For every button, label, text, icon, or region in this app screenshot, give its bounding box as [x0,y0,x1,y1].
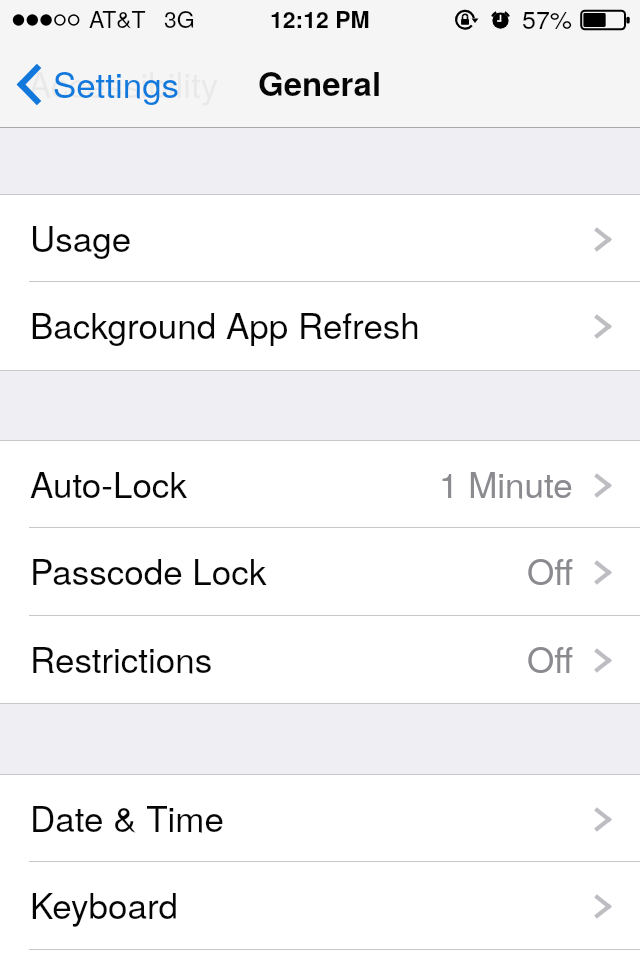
staticText: Auto-Lock [30,458,188,508]
staticText: Usage [30,212,132,262]
staticText: Keyboard [30,879,179,929]
staticText: Passcode Lock [30,545,267,595]
staticText: AT&T [89,2,146,35]
staticText: 1 Minute [439,458,573,508]
button[interactable]: Restrictions [0,616,640,704]
other: Back to Settings [18,65,40,104]
button[interactable]: Back to Settings [0,45,194,128]
staticText: Off [527,633,573,683]
staticText: 57% [522,0,573,36]
button[interactable]: Passcode Lock [0,528,640,616]
staticText: Restrictions [30,633,213,683]
staticText: 12:12 PM [270,2,370,35]
staticText: General [258,59,382,106]
staticText: Background App Refresh [30,299,420,349]
button[interactable]: Auto-Lock [0,441,640,529]
button[interactable]: Background App Refresh [0,282,640,370]
button[interactable]: Keyboard [0,862,640,950]
staticText: 3G [164,2,195,35]
staticText: Off [527,545,573,595]
staticText: Settings [53,58,180,108]
staticText: Date & Time [30,792,224,842]
staticText: Accessibility [28,58,219,108]
button[interactable]: Usage [0,195,640,283]
button[interactable]: Date & Time [0,775,640,863]
